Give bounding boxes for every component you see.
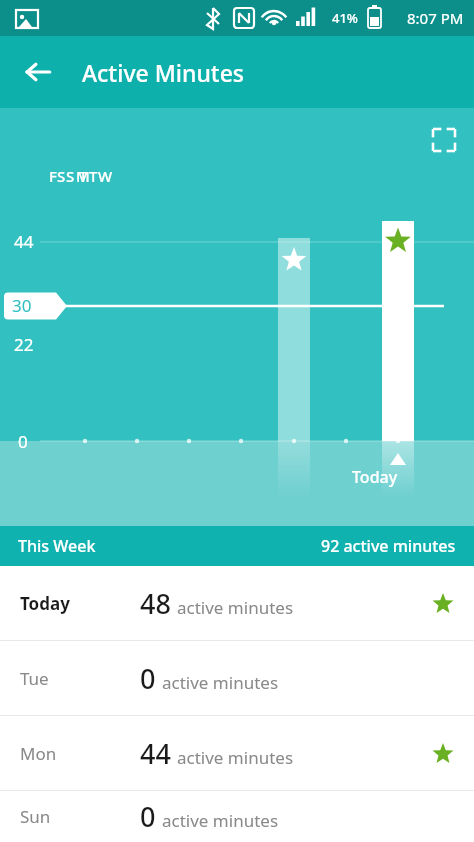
staticText: T	[89, 166, 98, 186]
staticText: active minutes	[162, 809, 279, 832]
staticText: Mon	[20, 742, 140, 765]
staticText: 30	[12, 294, 32, 317]
staticText: 41%	[332, 9, 358, 27]
staticText: Tue	[20, 667, 140, 690]
staticText: 44	[140, 735, 171, 772]
button[interactable]: Today	[0, 566, 474, 640]
staticText: F	[49, 166, 57, 186]
staticText: 22	[14, 333, 34, 356]
staticText: T	[79, 166, 88, 186]
staticText: 0	[18, 430, 28, 453]
button[interactable]: Back	[14, 48, 62, 96]
staticText: active minutes	[177, 746, 294, 769]
staticText: W	[98, 166, 113, 186]
button[interactable]: Tue	[0, 641, 474, 715]
staticText: 8:07 PM	[407, 8, 464, 28]
staticText: S	[66, 166, 75, 186]
staticText: active minutes	[162, 671, 279, 694]
staticText: active minutes	[177, 596, 294, 619]
button[interactable]: Sun	[0, 791, 474, 842]
button[interactable]: Expand chart	[422, 118, 466, 162]
staticText: This Week	[18, 535, 96, 557]
staticText: M	[76, 166, 90, 186]
staticText: 44	[14, 230, 34, 253]
staticText: Today	[352, 466, 398, 488]
staticText: Active Minutes	[82, 57, 245, 88]
button[interactable]: This Week	[0, 526, 474, 566]
button[interactable]: Mon	[0, 716, 474, 790]
staticText: 48	[140, 585, 171, 622]
staticText: Sun	[20, 805, 140, 828]
staticText: 0	[140, 798, 156, 835]
staticText: Today	[20, 592, 140, 615]
staticText: 0	[140, 660, 156, 697]
staticText: 92 active minutes	[321, 535, 456, 557]
staticText: S	[57, 166, 66, 186]
